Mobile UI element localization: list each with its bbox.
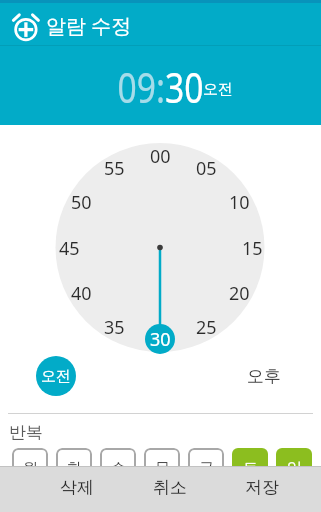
staticText: 45 [59,236,80,260]
staticText: 수 [111,459,126,478]
staticText: 09: [117,59,165,115]
staticText: 토 [243,459,258,478]
button[interactable]: 오전 [36,356,76,396]
button[interactable]: 삭제 [31,464,123,510]
staticText: 00 [150,144,171,168]
staticText: 알람 수정 [46,12,132,39]
staticText: 화 [67,459,82,478]
button[interactable]: 수 [100,448,136,485]
staticText: 05 [196,156,217,180]
button[interactable]: 일 [276,448,312,485]
staticText: 일 [287,459,302,478]
button[interactable]: 목 [144,448,180,485]
staticText: 55 [104,156,125,180]
staticText: 35 [104,315,125,339]
staticText: 월 [23,459,38,478]
staticText: 오후 [247,366,281,387]
button[interactable]: 화 [56,448,92,485]
staticText: 금 [199,459,214,478]
staticText: 25 [196,315,217,339]
staticText: 40 [71,281,92,305]
staticText: 20 [229,281,250,305]
staticText: 삭제 [60,477,94,498]
button[interactable]: 토 [232,448,268,485]
staticText: 취소 [153,477,187,498]
staticText: 30 [150,327,171,351]
staticText: 저장 [245,477,279,498]
staticText: 15 [242,236,263,260]
staticText: 오전 [203,80,233,98]
button[interactable]: 취소 [124,464,216,510]
button[interactable]: 금 [188,448,224,485]
button[interactable]: 저장 [216,464,308,510]
staticText: 오전 [41,367,71,386]
button[interactable]: 알람 수정 [46,0,132,50]
button[interactable]: 오후 [234,356,294,396]
button[interactable]: 월 [12,448,48,485]
staticText: 반복 [9,422,43,442]
staticText: 목 [155,459,170,478]
staticText: 10 [229,190,250,214]
staticText: 30 [165,59,203,115]
staticText: 50 [71,190,92,214]
